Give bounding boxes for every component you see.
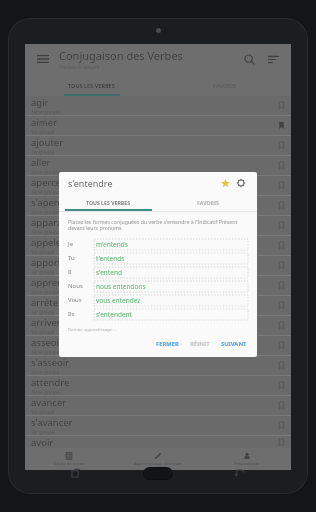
button[interactable]: apporter	[25, 256, 291, 276]
staticText: SUIVANT	[221, 340, 247, 348]
staticText: 1er groupe	[31, 269, 55, 275]
button[interactable]: nous entendons	[94, 281, 248, 292]
staticText: Ils	[68, 310, 94, 318]
staticText: 3ème groupe	[31, 369, 60, 375]
button[interactable]: TOUS LES VERBES	[59, 194, 158, 211]
button[interactable]: FERMER	[154, 338, 181, 350]
staticText: s'asseoir	[31, 356, 70, 369]
button[interactable]: s'apercevoir	[25, 196, 291, 216]
button[interactable]: s'entendent	[94, 309, 248, 320]
button[interactable]: apprendre	[25, 276, 291, 296]
staticText: 3ème groupe	[31, 189, 60, 195]
button[interactable]: s'avancer	[25, 416, 291, 436]
button[interactable]: appeler	[25, 236, 291, 256]
staticText: apprendre	[31, 276, 78, 289]
staticText: Placez les formes conjuguées du verbe s'…	[68, 218, 248, 232]
staticText: FAVORIS	[213, 82, 237, 89]
staticText: m'entends	[96, 240, 128, 249]
staticText: s'avancer	[31, 416, 73, 429]
button[interactable]: Menu	[33, 49, 53, 69]
button[interactable]: arriver	[25, 316, 291, 336]
staticText: Conjugaison des Verbes	[59, 48, 183, 63]
staticText: aller	[31, 156, 51, 169]
staticText: Nous	[68, 282, 94, 290]
button[interactable]: asseoir	[25, 336, 291, 356]
button[interactable]: SUIVANT	[219, 338, 249, 350]
button[interactable]: Apprentissage d'écriture	[113, 448, 202, 470]
staticText: 1er groupe	[31, 249, 55, 255]
button[interactable]: TOUS LES VERBES	[25, 74, 158, 96]
staticText: arrêter	[31, 296, 63, 309]
staticText: apercevoir	[31, 176, 78, 189]
button[interactable]: aimer	[25, 116, 291, 136]
button[interactable]: vous entendez	[94, 295, 248, 306]
staticText: avoir	[31, 436, 54, 448]
staticText: Apprentissage d'écriture	[134, 461, 182, 467]
button[interactable]: ajouter	[25, 136, 291, 156]
staticText: s'entendre	[68, 177, 218, 189]
staticText: 3ème groupe	[31, 209, 60, 215]
staticText: 3ème groupe	[31, 169, 60, 175]
button[interactable]: avancer	[25, 396, 291, 416]
staticText: appeler	[31, 236, 66, 249]
button[interactable]: aller	[25, 156, 291, 176]
staticText: asseoir	[31, 336, 63, 349]
staticText: Dernier apprentissage : -	[68, 327, 117, 333]
staticText: nous entendons	[96, 282, 146, 291]
button[interactable]: Search	[239, 49, 259, 69]
staticText: Il	[68, 268, 94, 276]
staticText: 1er groupe	[31, 429, 55, 435]
staticText: Prépositions	[234, 461, 259, 467]
button[interactable]: Recents	[67, 464, 85, 482]
button[interactable]: apparaître	[25, 216, 291, 236]
staticText: 1er groupe	[31, 409, 55, 415]
button[interactable]: avoir	[25, 436, 291, 448]
button[interactable]: Choix de forme	[25, 448, 113, 470]
staticText: RÉINIT	[190, 340, 210, 348]
staticText: 1er groupe	[31, 149, 55, 155]
staticText: ajouter	[31, 136, 64, 149]
staticText: FERMER	[156, 340, 179, 348]
staticText: apporter	[31, 256, 71, 269]
staticText: 1er groupe	[31, 309, 55, 315]
staticText: 1er groupe	[31, 329, 55, 335]
staticText: attendre	[31, 376, 70, 389]
staticText: t'entends	[96, 254, 125, 263]
button[interactable]: attendre	[25, 376, 291, 396]
button[interactable]: apercevoir	[25, 176, 291, 196]
staticText: 3ème groupe	[31, 289, 60, 295]
staticText: TOUS LES VERBES	[68, 82, 115, 89]
staticText: FAVORIS	[197, 199, 219, 206]
staticText: Verbes Français	[59, 63, 100, 70]
button[interactable]: Settings	[234, 176, 248, 190]
button[interactable]: FAVORIS	[158, 194, 257, 211]
button[interactable]: RÉINIT	[188, 338, 212, 350]
button[interactable]: Back	[231, 464, 249, 482]
staticText: arriver	[31, 316, 61, 329]
staticText: Je	[68, 240, 94, 248]
button[interactable]: agir	[25, 96, 291, 116]
staticText: TOUS LES VERBES	[86, 199, 131, 206]
button[interactable]: Prépositions	[202, 448, 291, 470]
button[interactable]: Home	[143, 467, 173, 480]
staticText: 3ème groupe	[31, 229, 60, 235]
staticText: 3ème groupe	[31, 389, 60, 395]
staticText: Tu	[68, 254, 94, 262]
button[interactable]: Favorite	[218, 176, 232, 190]
staticText: avancer	[31, 396, 67, 409]
button[interactable]: t'entends	[94, 253, 248, 264]
staticText: s'apercevoir	[31, 196, 85, 209]
staticText: aimer	[31, 116, 57, 129]
button[interactable]: arrêter	[25, 296, 291, 316]
button[interactable]: s'entend	[94, 267, 248, 278]
button[interactable]: m'entends	[94, 239, 248, 250]
staticText: 3ème groupe	[31, 109, 60, 115]
button[interactable]: s'asseoir	[25, 356, 291, 376]
staticText: 3ème groupe	[31, 349, 60, 355]
staticText: Vous	[68, 296, 94, 304]
staticText: agir	[31, 96, 49, 109]
button[interactable]: Sort	[263, 49, 283, 69]
staticText: Choix de forme	[54, 461, 85, 467]
staticText: vous entendez	[96, 296, 141, 305]
